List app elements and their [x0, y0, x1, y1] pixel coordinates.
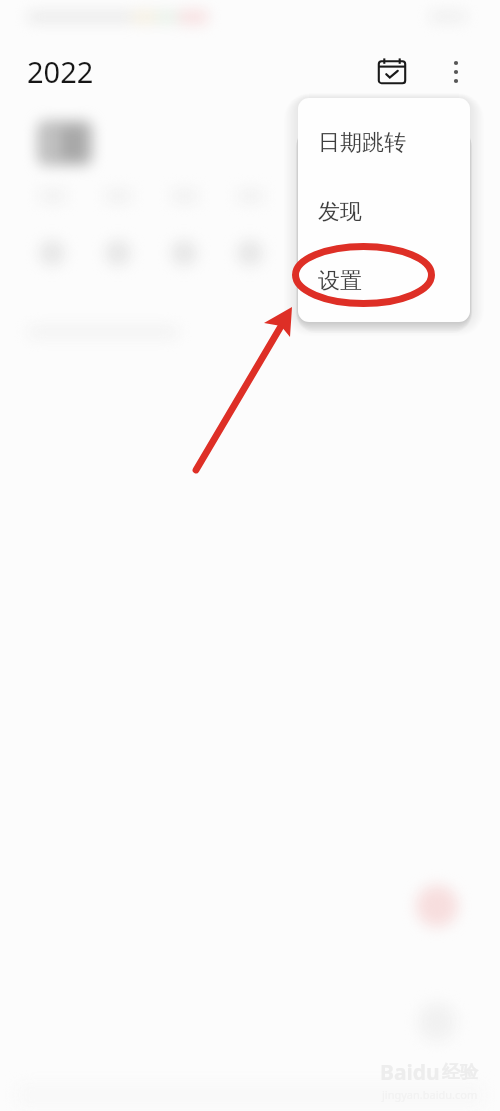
staticText: 设置 — [318, 267, 362, 295]
staticText: 2022 — [27, 52, 94, 91]
button[interactable]: 日期跳转 — [298, 108, 470, 177]
button[interactable]: Jump to today — [369, 49, 415, 95]
button[interactable]: 发现 — [298, 177, 470, 246]
staticText: 经验 — [442, 1061, 478, 1084]
button[interactable]: 设置 — [298, 246, 470, 315]
staticText: 日期跳转 — [318, 129, 406, 157]
button[interactable]: More options — [433, 49, 479, 95]
staticText: 发现 — [318, 198, 362, 226]
staticText: Baidu — [380, 1058, 440, 1087]
